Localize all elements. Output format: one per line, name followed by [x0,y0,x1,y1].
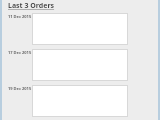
button[interactable]: 19 Dec 2015 [0,85,160,120]
button[interactable]: 11 Dec 2015 [0,13,160,49]
button[interactable]: 17 Dec 2015 [0,49,160,85]
staticText: 19 Dec 2015 [8,86,32,91]
staticText: 11 Dec 2015 [8,14,32,19]
staticText: 17 Dec 2015 [8,50,32,55]
staticText: Last 3 Orders [8,1,55,11]
